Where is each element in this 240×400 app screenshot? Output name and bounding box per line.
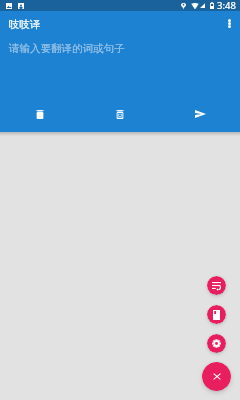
button[interactable]: More options (218, 12, 240, 34)
button[interactable]: Translation history (207, 276, 226, 295)
button[interactable]: Close menu (202, 362, 231, 391)
button[interactable]: Dictionary (207, 305, 226, 324)
staticText: 3:48 (217, 0, 236, 10)
button[interactable]: Send (160, 100, 240, 128)
button[interactable]: Settings (207, 334, 226, 353)
staticText: 请输入要翻译的词或句子 (9, 42, 125, 55)
button[interactable]: Clear text (0, 100, 80, 128)
staticText: 吱吱译 (9, 18, 41, 31)
button[interactable]: Clear history (80, 100, 160, 128)
